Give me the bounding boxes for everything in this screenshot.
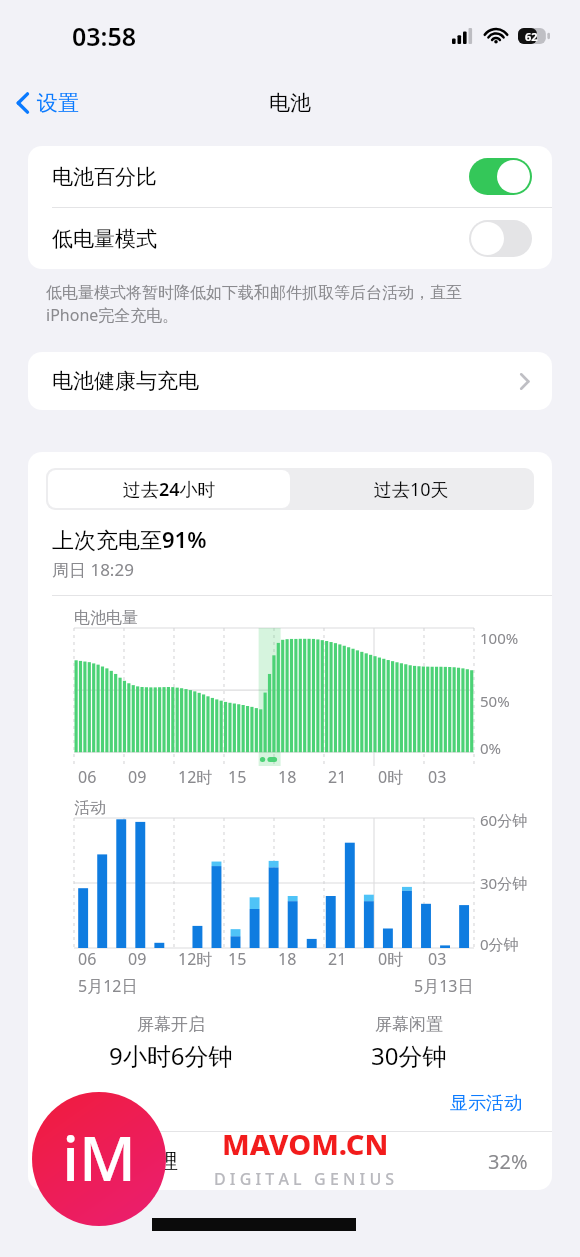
staticText: 09: [128, 948, 147, 970]
staticText: 0时: [378, 766, 404, 788]
staticText: 15: [228, 948, 247, 970]
button[interactable]: 显示活动: [444, 1086, 528, 1121]
staticText: 5月12日: [78, 975, 138, 997]
staticText: 62: [525, 29, 538, 44]
staticText: 21: [328, 948, 347, 970]
staticText: 低电量模式: [52, 226, 157, 252]
staticText: 0%: [480, 738, 502, 758]
staticText: 60分钟: [480, 810, 528, 830]
staticText: 30分钟: [480, 873, 528, 893]
staticText: MAVOM.CN: [222, 1124, 389, 1163]
staticText: 32%: [488, 1148, 528, 1175]
staticText: 周日 18:29: [52, 558, 134, 581]
staticText: 06: [78, 948, 97, 970]
staticText: 18: [278, 766, 297, 788]
staticText: 电池百分比: [52, 164, 157, 190]
staticText: 过去24小时: [123, 477, 216, 502]
staticText: 21: [328, 766, 347, 788]
staticText: 0分钟: [480, 934, 519, 954]
staticText: 15: [228, 766, 247, 788]
staticText: 03: [428, 766, 447, 788]
staticText: 哔哩哔哩: [98, 1149, 178, 1174]
staticText: 0时: [378, 948, 404, 970]
staticText: 9小时6分钟: [109, 1039, 233, 1072]
button[interactable]: 电池百分比: [28, 146, 552, 207]
staticText: 上次充电至91%: [52, 524, 207, 554]
staticText: 屏幕开启: [137, 1014, 205, 1035]
staticText: 电池电量: [74, 608, 138, 628]
staticText: D I G I T A L G E N I U S: [214, 1168, 395, 1190]
staticText: 活动: [74, 798, 106, 818]
button[interactable]: 过去24小时: [48, 470, 290, 508]
staticText: 电池健康与充电: [52, 368, 199, 394]
staticText: 50%: [480, 691, 510, 711]
button[interactable]: bili: [28, 1132, 552, 1190]
staticText: 100%: [480, 628, 519, 648]
staticText: 低电量模式将暂时降低如下载和邮件抓取等后台活动，直至 iPhone完全充电。: [46, 283, 462, 326]
staticText: bili: [62, 1155, 76, 1167]
staticText: 12时: [178, 948, 213, 970]
staticText: 30分钟: [371, 1039, 447, 1072]
staticText: 过去10天: [374, 477, 449, 502]
staticText: 屏幕闲置: [375, 1014, 443, 1035]
staticText: 12时: [178, 766, 213, 788]
button[interactable]: 低电量模式: [28, 208, 552, 269]
staticText: 03: [428, 948, 447, 970]
staticText: iM: [62, 1115, 136, 1199]
staticText: 09: [128, 766, 147, 788]
staticText: 电池: [269, 90, 311, 116]
staticText: 06: [78, 766, 97, 788]
staticText: 5月13日: [414, 975, 474, 997]
staticText: 03:58: [72, 19, 137, 53]
staticText: 设置: [37, 90, 79, 116]
button[interactable]: 电池健康与充电: [28, 352, 552, 410]
staticText: 18: [278, 948, 297, 970]
button[interactable]: 过去10天: [290, 470, 532, 508]
button[interactable]: 设置: [0, 84, 91, 122]
